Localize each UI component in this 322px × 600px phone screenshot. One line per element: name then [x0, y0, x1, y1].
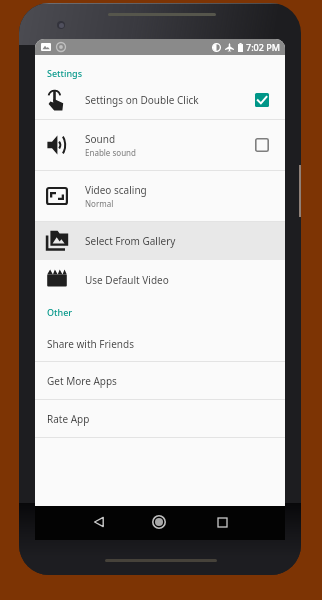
- button[interactable]: Sound: [35, 120, 285, 170]
- staticText: Normal: [85, 198, 114, 209]
- staticText: Video scaling: [85, 183, 147, 197]
- button[interactable]: Select From Gallery: [35, 222, 285, 260]
- staticText: Other: [47, 306, 73, 318]
- staticText: Get More Apps: [47, 374, 117, 388]
- staticText: Enable sound: [85, 147, 136, 158]
- staticText: 7:02 PM: [246, 41, 280, 53]
- button[interactable]: Back: [83, 506, 115, 538]
- staticText: Select From Gallery: [85, 234, 176, 248]
- button[interactable]: Recent apps: [206, 506, 238, 538]
- button[interactable]: Get More Apps: [35, 362, 285, 399]
- staticText: Sound: [85, 132, 116, 146]
- button[interactable]: Rate App: [35, 400, 285, 437]
- staticText: Share with Friends: [47, 337, 134, 351]
- staticText: Use Default Video: [85, 273, 169, 287]
- button[interactable]: Home: [143, 506, 175, 538]
- button[interactable]: Settings on Double Click: [35, 80, 285, 119]
- button[interactable]: Share with Friends: [35, 326, 285, 361]
- button[interactable]: Video scaling: [35, 171, 285, 221]
- staticText: Settings: [47, 67, 83, 79]
- staticText: Rate App: [47, 412, 90, 426]
- staticText: Settings on Double Click: [85, 93, 199, 107]
- button[interactable]: Use Default Video: [35, 260, 285, 299]
